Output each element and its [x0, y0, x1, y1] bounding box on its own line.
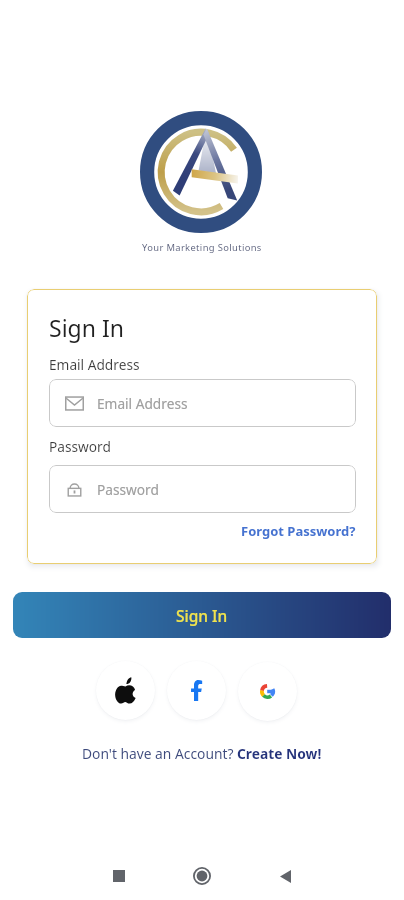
staticText: Email Address [49, 355, 140, 374]
staticText: Sign In [49, 312, 124, 343]
button[interactable]: Home [178, 852, 226, 900]
staticText: Email Address [97, 394, 188, 413]
button[interactable]: Email Address [49, 379, 356, 427]
staticText: Password [49, 437, 111, 456]
staticText: Your Marketing Solutions [142, 241, 262, 254]
button[interactable]: Sign in with Google [238, 662, 297, 721]
button[interactable]: Forgot Password? [241, 522, 356, 540]
button[interactable]: Password [49, 465, 356, 513]
button[interactable]: Sign in with Facebook [167, 661, 226, 720]
button[interactable]: Don't have an Account? Create Now! [82, 744, 322, 763]
button[interactable]: Back [261, 852, 309, 900]
button[interactable]: Sign In [13, 592, 391, 638]
button[interactable]: Recents [95, 852, 143, 900]
staticText: Sign In [176, 605, 228, 626]
button[interactable]: Sign in with Apple [96, 661, 155, 720]
staticText: Don't have an Account? Create Now! [82, 744, 322, 763]
staticText: Password [97, 480, 159, 499]
